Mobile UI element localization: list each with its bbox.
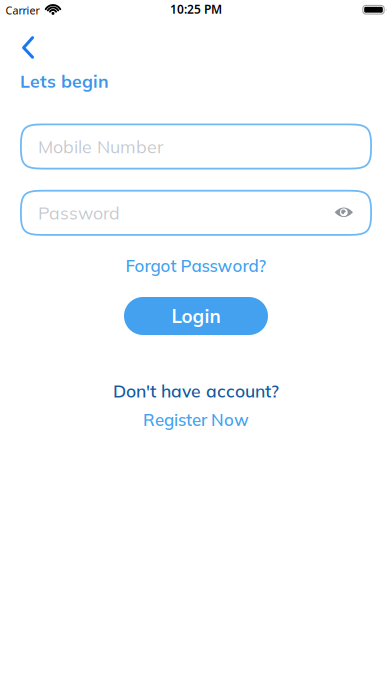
staticText: Don't have account? bbox=[113, 380, 279, 402]
staticText: Lets begin bbox=[20, 70, 109, 92]
staticText: Forgot Password? bbox=[125, 255, 266, 276]
staticText: Login bbox=[171, 304, 220, 328]
button[interactable]: Mobile Number bbox=[20, 123, 372, 169]
button[interactable]: Password bbox=[20, 190, 372, 236]
button[interactable]: Forgot Password? bbox=[125, 255, 266, 276]
button[interactable]: Login bbox=[124, 297, 268, 335]
staticText: Mobile Number bbox=[38, 135, 163, 158]
staticText: Password bbox=[38, 202, 120, 224]
staticText: Carrier bbox=[5, 3, 39, 18]
staticText: Register Now bbox=[143, 409, 249, 430]
button[interactable] bbox=[331, 202, 357, 222]
staticText: 10:25 PM bbox=[170, 1, 222, 17]
button[interactable] bbox=[10, 33, 46, 63]
button[interactable]: Register Now bbox=[143, 409, 249, 430]
